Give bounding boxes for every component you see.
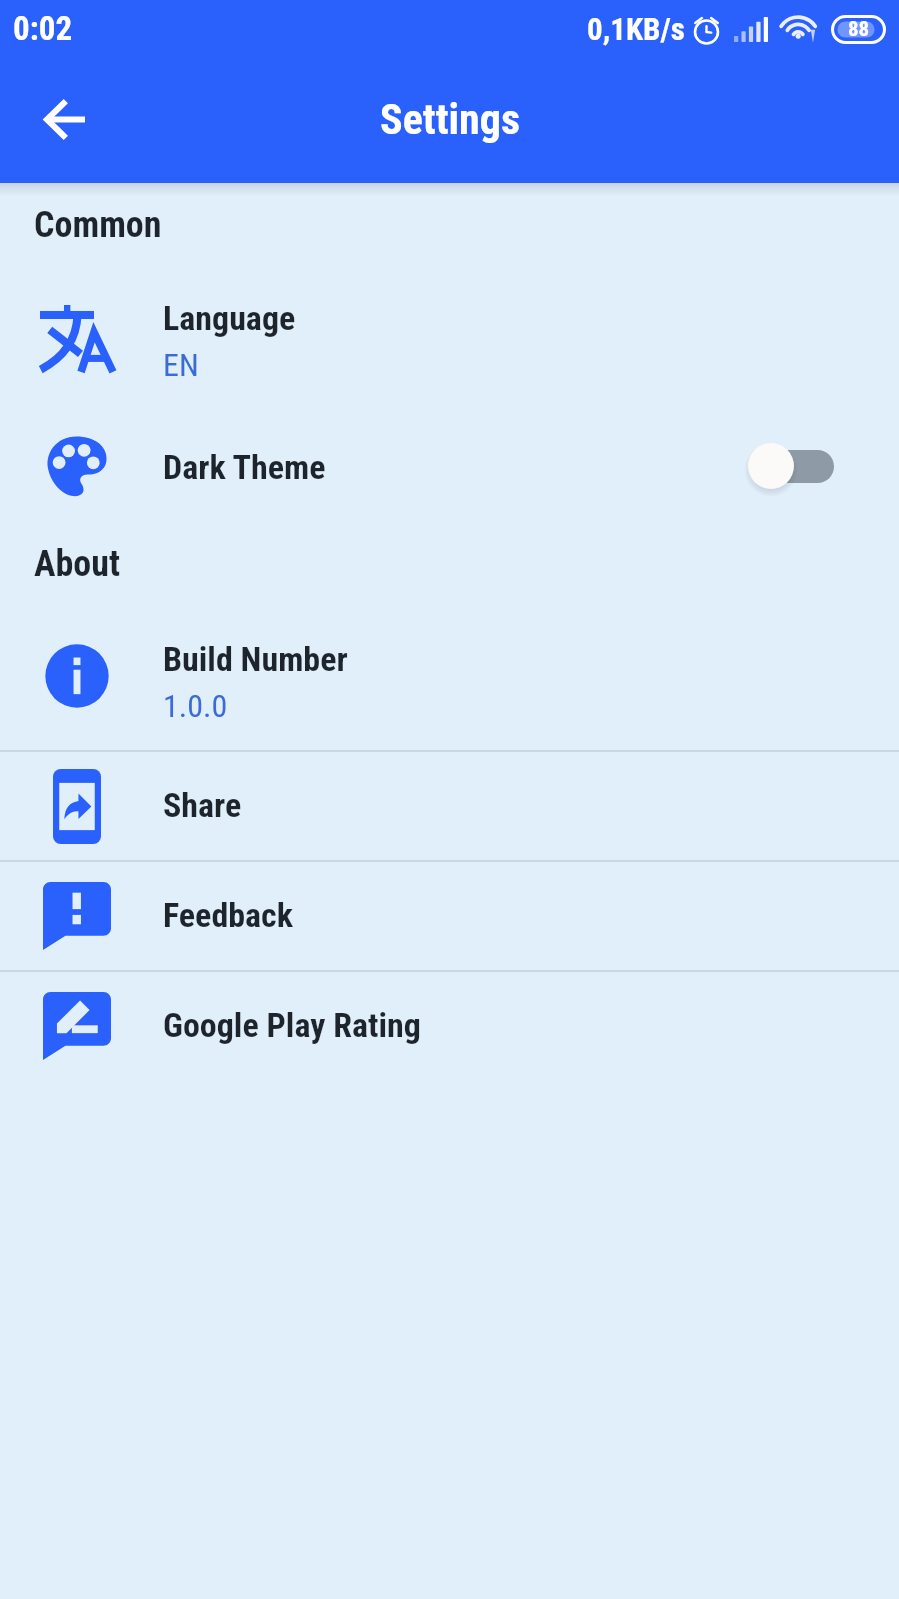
staticText: Dark Theme: [163, 447, 326, 487]
staticText: Settings: [380, 95, 520, 144]
staticText: Google Play Rating: [163, 1005, 421, 1045]
button[interactable]: Share: [0, 751, 899, 860]
staticText: Common: [34, 204, 162, 246]
button[interactable]: Dark Theme: [0, 400, 899, 495]
staticText: EN: [163, 346, 199, 384]
button[interactable]: Back: [25, 79, 105, 159]
staticText: 88: [848, 17, 870, 42]
staticText: Feedback: [163, 895, 293, 935]
staticText: 0,1KB/s: [587, 11, 685, 47]
button[interactable]: Dark Theme switch: [736, 435, 846, 497]
staticText: About: [34, 543, 120, 585]
staticText: Language: [163, 298, 296, 338]
button[interactable]: Google Play Rating: [0, 971, 899, 1080]
button[interactable]: Feedback: [0, 861, 899, 970]
staticText: Share: [163, 785, 242, 825]
button[interactable]: Build Number: [0, 595, 899, 695]
button[interactable]: Language: [0, 258, 899, 346]
staticText: 0:02: [13, 9, 73, 48]
staticText: Build Number: [163, 639, 348, 679]
staticText: 1.0.0: [163, 687, 228, 725]
